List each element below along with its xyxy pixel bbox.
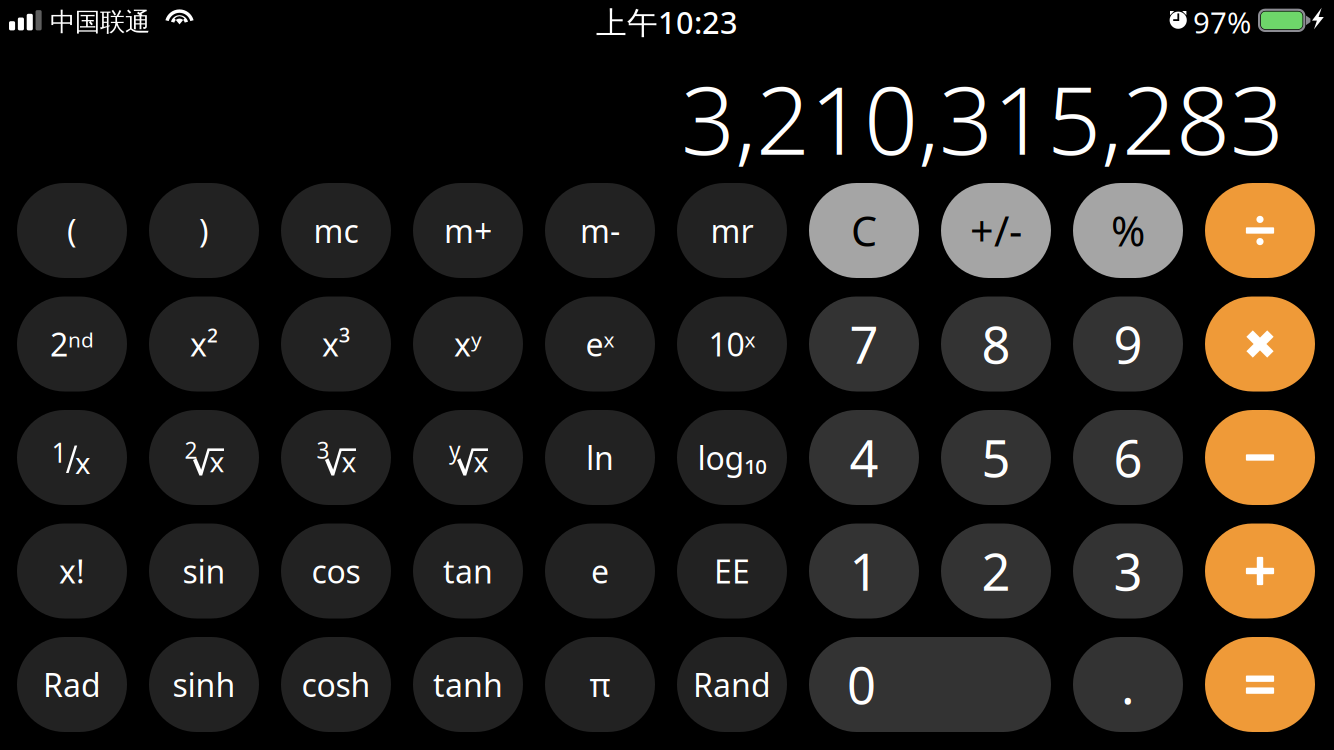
button[interactable]: 4 — [809, 410, 919, 505]
button[interactable]: 3 — [1073, 523, 1183, 618]
staticText: y — [449, 435, 461, 465]
button[interactable]: sin — [149, 523, 259, 618]
button[interactable]: x³ — [281, 296, 391, 391]
button[interactable]: +/- — [941, 183, 1051, 278]
staticText: 0 — [847, 651, 876, 718]
staticText: 中国联通 — [50, 6, 150, 37]
staticText: 9 — [1113, 310, 1142, 378]
button[interactable]: tanh — [413, 637, 523, 732]
staticText: cos — [311, 550, 360, 592]
button[interactable]: Multiply — [1205, 296, 1315, 391]
staticText: ln — [586, 436, 614, 479]
button[interactable]: 1 — [17, 410, 127, 505]
staticText: m- — [580, 209, 620, 252]
staticText: log₁₀ — [697, 436, 766, 479]
button[interactable]: 0 — [809, 637, 1051, 732]
button[interactable]: 2ⁿᵈ — [17, 296, 127, 391]
staticText: 1 — [849, 537, 878, 605]
button[interactable]: cos — [281, 523, 391, 618]
button[interactable]: 2 — [941, 523, 1051, 618]
button[interactable]: Rand — [677, 637, 787, 732]
staticText: x² — [190, 323, 218, 365]
button[interactable]: Add — [1205, 523, 1315, 618]
staticText: xʸ — [454, 323, 482, 365]
button[interactable]: 7 — [809, 296, 919, 391]
button[interactable]: mr — [677, 183, 787, 278]
staticText: eˣ — [585, 323, 614, 365]
staticText: 2 — [184, 435, 197, 465]
staticText: 1 — [51, 435, 66, 470]
staticText: 5 — [981, 424, 1010, 491]
staticText: 10ˣ — [708, 323, 755, 365]
staticText: Rand — [693, 663, 771, 706]
staticText: tanh — [433, 663, 503, 706]
staticText: x — [209, 443, 224, 480]
staticText: EE — [714, 550, 750, 592]
staticText: 上午10:23 — [596, 2, 738, 42]
staticText: 2ⁿᵈ — [50, 323, 94, 365]
staticText: % — [1111, 203, 1145, 258]
staticText: x³ — [322, 323, 350, 365]
staticText: π — [589, 663, 610, 706]
button[interactable]: sinh — [149, 637, 259, 732]
button[interactable]: π — [545, 637, 655, 732]
staticText: 8 — [981, 310, 1010, 378]
button[interactable]: ( — [17, 183, 127, 278]
button[interactable]: ) — [149, 183, 259, 278]
staticText: sin — [182, 550, 225, 592]
button[interactable]: 10ˣ — [677, 296, 787, 391]
staticText: x! — [59, 550, 85, 592]
button[interactable]: EE — [677, 523, 787, 618]
button[interactable]: e — [545, 523, 655, 618]
staticText: ( — [67, 209, 77, 252]
staticText: x — [341, 443, 356, 480]
button[interactable]: 1 — [809, 523, 919, 618]
button[interactable]: 6 — [1073, 410, 1183, 505]
staticText: 4 — [849, 424, 878, 491]
staticText: e — [591, 550, 609, 592]
staticText: x — [75, 443, 91, 482]
button[interactable]: 5 — [941, 410, 1051, 505]
button[interactable]: tan — [413, 523, 523, 618]
staticText: 7 — [849, 310, 878, 378]
staticText: cosh — [301, 663, 370, 706]
staticText: mr — [710, 209, 753, 252]
staticText: 2 — [981, 537, 1010, 605]
button[interactable]: Subtract — [1205, 410, 1315, 505]
staticText: m+ — [444, 209, 492, 252]
button[interactable]: eˣ — [545, 296, 655, 391]
staticText: tan — [443, 550, 493, 592]
button[interactable]: 2 — [149, 410, 259, 505]
button[interactable]: C — [809, 183, 919, 278]
button[interactable]: 3 — [281, 410, 391, 505]
button[interactable]: ln — [545, 410, 655, 505]
button[interactable]: Rad — [17, 637, 127, 732]
button[interactable]: xʸ — [413, 296, 523, 391]
staticText: ) — [199, 209, 209, 252]
staticText: . — [1121, 651, 1135, 718]
button[interactable]: % — [1073, 183, 1183, 278]
button[interactable]: cosh — [281, 637, 391, 732]
staticText: x — [473, 443, 488, 480]
button[interactable]: Divide — [1205, 183, 1315, 278]
button[interactable]: 8 — [941, 296, 1051, 391]
button[interactable]: m+ — [413, 183, 523, 278]
button[interactable]: Equals — [1205, 637, 1315, 732]
staticText: Rad — [43, 663, 101, 706]
button[interactable]: x! — [17, 523, 127, 618]
button[interactable]: . — [1073, 637, 1183, 732]
button[interactable]: x² — [149, 296, 259, 391]
staticText: 3,210,315,283 — [681, 55, 1284, 181]
button[interactable]: log₁₀ — [677, 410, 787, 505]
staticText: 3 — [316, 435, 329, 465]
button[interactable]: y — [413, 410, 523, 505]
button[interactable]: mc — [281, 183, 391, 278]
staticText: 3 — [1113, 537, 1142, 605]
staticText: mc — [313, 209, 358, 252]
staticText: C — [851, 203, 877, 258]
button[interactable]: 9 — [1073, 296, 1183, 391]
staticText: 97% — [1193, 2, 1251, 41]
staticText: +/- — [970, 203, 1022, 258]
button[interactable]: m- — [545, 183, 655, 278]
staticText: 6 — [1113, 424, 1142, 491]
